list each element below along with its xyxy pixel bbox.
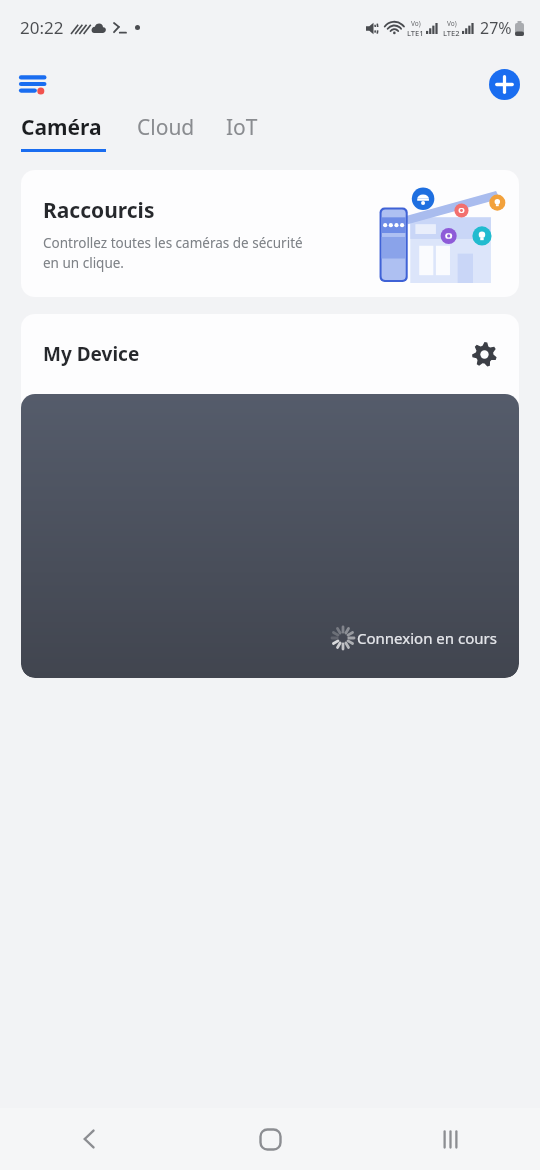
button[interactable]: Menu	[12, 60, 60, 108]
button[interactable]: Back	[62, 1111, 118, 1167]
staticText: 20:22	[20, 16, 64, 39]
staticText: LTE1	[407, 28, 424, 38]
staticText: Connexion en cours	[357, 628, 497, 648]
button[interactable]: Recent apps	[422, 1111, 478, 1167]
staticText: 27%	[480, 17, 512, 39]
button[interactable]: Settings	[463, 333, 505, 375]
staticText: LTE2	[443, 28, 460, 38]
staticText: Controllez toutes les caméras de sécurit…	[43, 234, 303, 272]
staticText: IoT	[226, 113, 258, 142]
staticText: Vo)	[447, 19, 457, 28]
button[interactable]: Cloud	[137, 113, 195, 152]
staticText: Cloud	[137, 113, 195, 142]
button[interactable]: IoT	[226, 113, 258, 152]
staticText: Caméra	[21, 113, 102, 142]
button[interactable]: Connexion en cours	[21, 394, 519, 678]
staticText: Raccourcis	[43, 196, 155, 225]
staticText: Vo)	[411, 19, 421, 28]
staticText: My Device	[43, 341, 140, 367]
button[interactable]: Home	[242, 1111, 298, 1167]
button[interactable]: Caméra	[21, 113, 102, 142]
button[interactable]: Add	[482, 62, 526, 106]
button[interactable]: Raccourcis	[21, 170, 519, 297]
